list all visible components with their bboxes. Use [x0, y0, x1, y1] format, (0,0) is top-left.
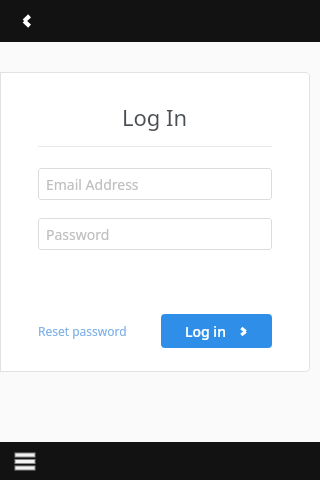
button[interactable]: Email Address [38, 168, 272, 200]
button[interactable]: Menu [10, 446, 40, 476]
staticText: Log In [122, 102, 188, 132]
staticText: Reset password [38, 323, 127, 339]
staticText: Email Address [46, 175, 139, 194]
button[interactable]: Reset password [38, 319, 127, 343]
staticText: Log in [185, 322, 226, 341]
button[interactable]: Password [38, 218, 272, 250]
button[interactable]: Log in [161, 314, 272, 348]
button[interactable]: Back [10, 4, 44, 38]
staticText: Password [46, 225, 110, 244]
